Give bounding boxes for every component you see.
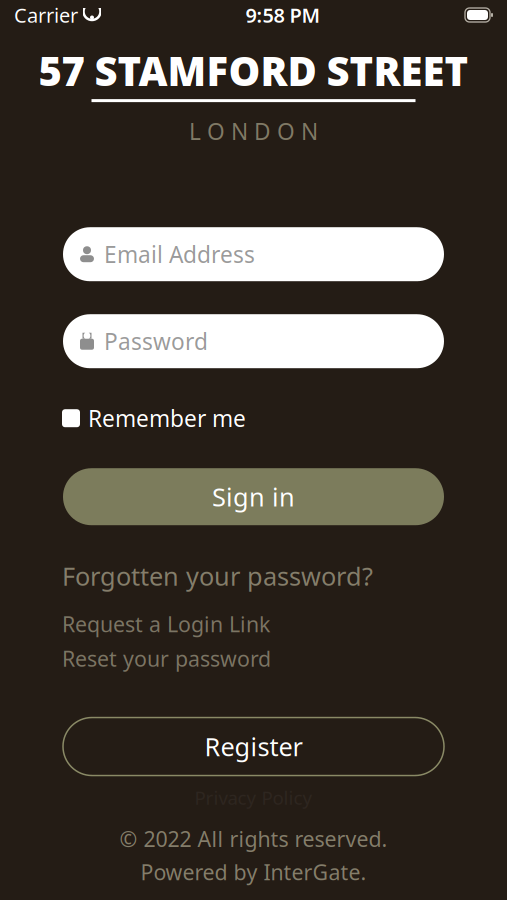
- staticText: 57 STAMFORD STREET: [38, 44, 468, 97]
- staticText: Register: [204, 730, 302, 763]
- button[interactable]: Sign in: [0, 468, 507, 525]
- button[interactable]: Forgotten your password?: [62, 559, 445, 593]
- button[interactable]: Reset your password: [62, 644, 445, 672]
- staticText: Powered by InterGate.: [140, 858, 366, 886]
- button[interactable]: Request a Login Link: [62, 610, 445, 638]
- staticText: Forgotten your password?: [62, 559, 373, 593]
- button[interactable]: Register: [0, 717, 507, 775]
- staticText: Privacy Policy: [194, 785, 312, 810]
- button[interactable]: Remember me: [0, 405, 507, 431]
- staticText: Request a Login Link: [62, 610, 270, 638]
- staticText: Remember me: [88, 403, 246, 433]
- staticText: Carrier: [14, 2, 78, 28]
- staticText: Sign in: [212, 480, 295, 513]
- staticText: Password: [104, 326, 208, 356]
- staticText: 9:58 PM: [245, 2, 320, 28]
- staticText: L O N D O N: [189, 116, 318, 146]
- staticText: © 2022 All rights reserved.: [119, 824, 387, 853]
- staticText: Email Address: [104, 239, 255, 269]
- staticText: Reset your password: [62, 644, 271, 672]
